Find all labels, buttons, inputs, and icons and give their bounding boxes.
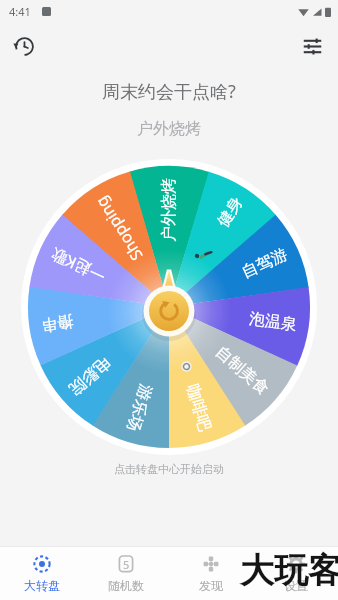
button[interactable]: 设置: [253, 547, 338, 600]
staticText: 户外烧烤: [0, 119, 338, 139]
button[interactable]: History: [6, 28, 42, 64]
staticText: 大玩客: [240, 549, 338, 592]
button[interactable]: 5: [84, 547, 168, 600]
staticText: 周末约会干点啥?: [0, 79, 338, 104]
staticText: 4:41: [9, 4, 31, 19]
staticText: 大转盘: [24, 578, 60, 593]
staticText: 5: [123, 557, 130, 572]
button[interactable]: Settings: [294, 28, 330, 64]
staticText: 随机数: [108, 578, 144, 593]
button[interactable]: 大转盘: [0, 547, 84, 600]
staticText: 发现: [199, 578, 223, 593]
staticText: 点击转盘中心开始启动: [0, 462, 338, 476]
button[interactable]: 发现: [168, 547, 253, 600]
staticText: 设置: [284, 578, 308, 593]
